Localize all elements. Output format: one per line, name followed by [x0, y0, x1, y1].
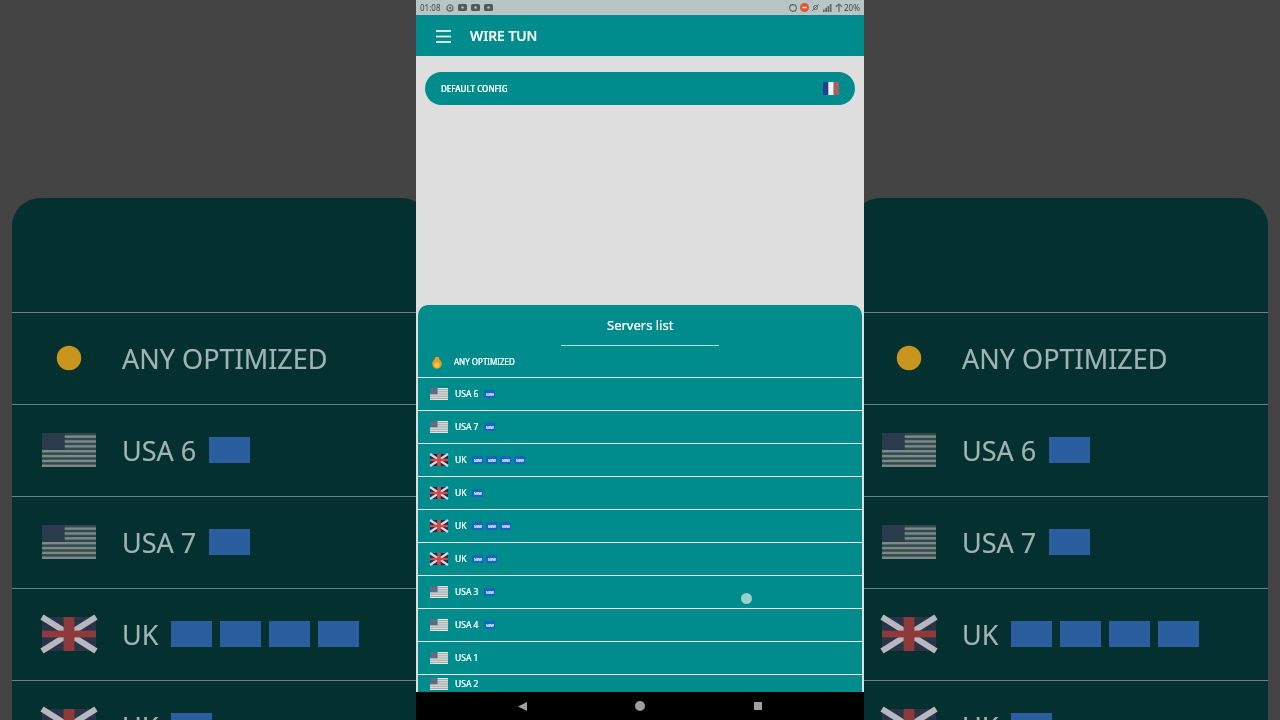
- button[interactable]: Open navigation menu: [428, 21, 458, 51]
- staticText: USA 7: [962, 524, 1037, 561]
- staticText: USA 7: [122, 524, 197, 561]
- button[interactable]: Home: [628, 694, 652, 718]
- staticText: NEW: [488, 524, 496, 529]
- staticText: USA 6: [455, 388, 479, 400]
- button[interactable]: USA 7: [418, 411, 862, 443]
- staticText: NEW: [502, 524, 510, 529]
- staticText: NEW: [474, 491, 482, 496]
- staticText: NEW: [486, 392, 494, 397]
- staticText: Servers list: [607, 316, 674, 334]
- staticText: 20%: [844, 2, 860, 13]
- staticText: NEW: [486, 590, 494, 595]
- button[interactable]: USA 3: [418, 576, 862, 608]
- staticText: ANY OPTIMIZED: [122, 340, 328, 377]
- button[interactable]: UK: [418, 510, 862, 542]
- staticText: USA 6: [122, 432, 197, 469]
- button[interactable]: USA 1: [418, 642, 862, 674]
- staticText: USA 7: [455, 421, 479, 433]
- staticText: WIRE TUN: [470, 26, 538, 45]
- button[interactable]: UK: [418, 444, 862, 476]
- staticText: NEW: [474, 458, 482, 463]
- staticText: NEW: [488, 557, 496, 562]
- staticText: UK: [455, 487, 467, 499]
- staticText: NEW: [474, 557, 482, 562]
- staticText: NEW: [474, 524, 482, 529]
- staticText: NEW: [516, 458, 524, 463]
- staticText: UK: [455, 520, 467, 532]
- staticText: USA 3: [455, 586, 479, 598]
- staticText: UK: [122, 616, 159, 653]
- staticText: UK: [455, 454, 467, 466]
- staticText: UK: [962, 708, 999, 720]
- button[interactable]: DEFAULT CONFIG: [425, 72, 855, 105]
- staticText: NEW: [486, 425, 494, 430]
- button[interactable]: UK: [418, 477, 862, 509]
- button[interactable]: ANY OPTIMIZED: [418, 346, 862, 377]
- staticText: NEW: [502, 458, 510, 463]
- staticText: UK: [122, 708, 159, 720]
- button[interactable]: USA 4: [418, 609, 862, 641]
- staticText: DEFAULT CONFIG: [441, 83, 508, 94]
- staticText: ANY OPTIMIZED: [962, 340, 1168, 377]
- staticText: USA 1: [455, 652, 479, 664]
- button[interactable]: UK: [418, 543, 862, 575]
- staticText: 01:08: [420, 2, 441, 13]
- staticText: USA 4: [455, 619, 479, 631]
- button[interactable]: Recent apps: [746, 694, 770, 718]
- staticText: USA 2: [455, 678, 479, 690]
- staticText: UK: [962, 616, 999, 653]
- staticText: UK: [455, 553, 467, 565]
- button[interactable]: USA 2: [418, 675, 862, 692]
- button[interactable]: USA 6: [418, 378, 862, 410]
- staticText: ANY OPTIMIZED: [454, 356, 515, 367]
- staticText: NEW: [486, 623, 494, 628]
- staticText: NEW: [488, 458, 496, 463]
- staticText: USA 6: [962, 432, 1037, 469]
- button[interactable]: Back: [510, 694, 534, 718]
